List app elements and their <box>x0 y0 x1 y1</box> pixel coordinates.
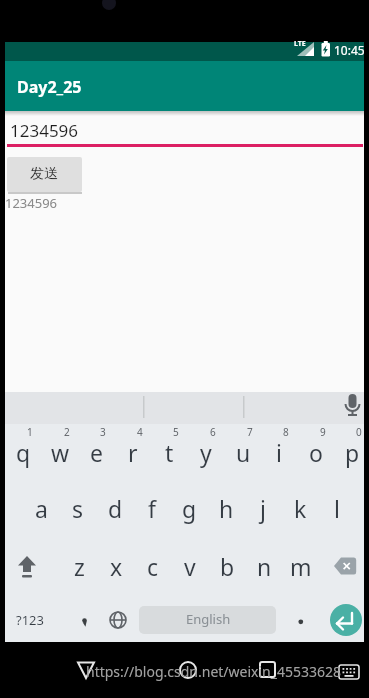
staticText: w <box>51 437 70 468</box>
staticText: 发送 <box>30 165 58 183</box>
staticText: g <box>182 493 197 524</box>
staticText: 9 <box>320 425 326 439</box>
staticText: English <box>186 610 231 628</box>
staticText: z <box>74 551 85 582</box>
staticText: u <box>236 437 251 468</box>
staticText: https://blog.csdn.net/weixin_45533628 <box>86 662 342 681</box>
staticText: i <box>276 437 282 468</box>
staticText: 4 <box>137 425 143 439</box>
staticText: f <box>148 493 156 524</box>
staticText: y <box>200 437 212 468</box>
staticText: 3 <box>100 425 106 439</box>
staticText: ?123 <box>16 611 44 629</box>
staticText: l <box>334 493 340 524</box>
staticText: 6 <box>210 425 216 439</box>
staticText: v <box>184 551 196 582</box>
staticText: 2 <box>64 425 70 439</box>
staticText: x <box>110 551 123 582</box>
staticText: k <box>294 493 307 524</box>
staticText: 5 <box>173 425 179 439</box>
staticText: h <box>219 493 234 524</box>
staticText: 1234596 <box>10 119 79 142</box>
staticText: LTE <box>294 39 306 49</box>
staticText: q <box>16 437 31 468</box>
staticText: o <box>309 437 323 468</box>
staticText: 7 <box>247 425 253 439</box>
staticText: m <box>290 551 312 582</box>
staticText: 10:45 <box>334 42 365 58</box>
staticText: p <box>345 437 360 468</box>
staticText: 1 <box>27 425 33 439</box>
staticText: d <box>108 493 123 524</box>
staticText: r <box>128 437 138 468</box>
staticText: Day2_25 <box>17 76 82 98</box>
staticText: s <box>72 493 84 524</box>
staticText: e <box>90 437 103 468</box>
staticText: 8 <box>283 425 289 439</box>
staticText: n <box>257 551 272 582</box>
staticText: c <box>147 551 159 582</box>
staticText: 0 <box>356 425 362 439</box>
staticText: b <box>220 551 235 582</box>
staticText: j <box>260 493 266 524</box>
staticText: a <box>35 493 48 524</box>
staticText: t <box>165 437 174 468</box>
staticText: 1234596 <box>5 194 58 212</box>
